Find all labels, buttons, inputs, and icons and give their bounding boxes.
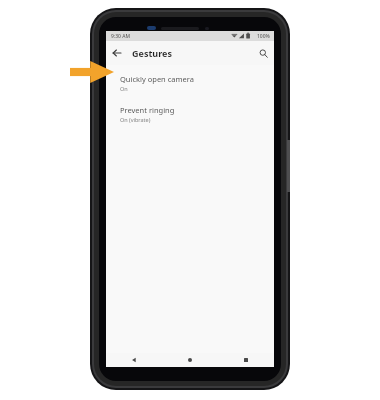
button[interactable]: Quickly open camera <box>106 72 274 94</box>
staticText: Prevent ringing <box>120 105 175 115</box>
button[interactable]: Back <box>106 42 128 64</box>
staticText: On <box>120 85 128 92</box>
button[interactable]: Home <box>162 353 218 367</box>
staticText: 9:30 AM <box>111 33 131 40</box>
staticText: Quickly open camera <box>120 74 194 84</box>
staticText: On (vibrate) <box>120 116 151 123</box>
button[interactable]: Back <box>106 353 162 367</box>
button[interactable]: Prevent ringing <box>106 103 274 125</box>
button[interactable]: Search <box>252 42 274 64</box>
staticText: Gestures <box>132 47 172 59</box>
staticText: 100% <box>257 33 270 40</box>
button[interactable]: Recent apps <box>218 353 274 367</box>
